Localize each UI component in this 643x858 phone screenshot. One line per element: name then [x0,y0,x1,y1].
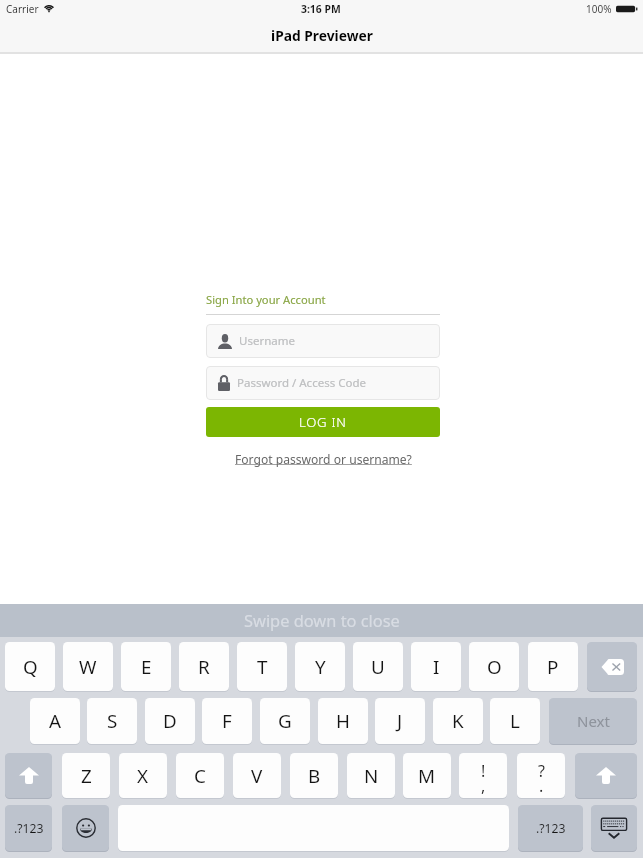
staticText: M [418,763,436,789]
staticText: Swipe down to close [244,609,400,631]
button[interactable]: P [528,642,578,691]
button[interactable]: A [30,698,80,744]
staticText: 100% [586,2,612,16]
staticText: Password / Access Code [237,375,366,391]
button[interactable]: ? [517,753,565,798]
button[interactable]: G [260,698,310,744]
staticText: V [251,763,263,789]
button[interactable]: Shift [5,753,52,798]
staticText: S [107,708,118,734]
staticText: Carrier [6,2,39,16]
staticText: I [433,654,440,680]
button[interactable]: Password / Access Code [206,366,440,400]
button[interactable]: Q [5,642,55,691]
staticText: P [547,654,559,680]
button[interactable]: LOG IN [206,407,440,437]
staticText: T [257,654,268,680]
button[interactable]: Y [295,642,345,691]
button[interactable]: B [290,753,338,798]
staticText: K [452,708,464,734]
staticText: 3:16 PM [301,2,341,16]
staticText: A [49,708,62,734]
button[interactable]: .?123 [5,805,52,851]
button[interactable]: M [403,753,451,798]
button[interactable]: ! [459,753,507,798]
button[interactable]: O [469,642,519,691]
button[interactable]: X [119,753,167,798]
other: Shift [596,767,616,784]
staticText: C [194,763,206,789]
button[interactable]: W [63,642,113,691]
button[interactable]: F [202,698,252,744]
button[interactable]: S [87,698,137,744]
staticText: G [278,708,292,734]
other: Shift [19,767,39,784]
staticText: X [137,763,149,789]
button[interactable]: V [233,753,281,798]
other: Emoji [76,818,96,838]
button[interactable]: D [145,698,195,744]
button[interactable]: Backspace [587,642,637,691]
staticText: U [371,654,385,680]
button[interactable]: J [375,698,425,744]
button[interactable]: C [176,753,224,798]
button[interactable]: Emoji [62,805,109,851]
staticText: .?123 [14,820,44,837]
staticText: E [141,654,152,680]
button[interactable]: E [121,642,171,691]
staticText: Y [315,654,326,680]
staticText: Next [577,711,610,731]
staticText: J [397,708,403,734]
button[interactable]: R [179,642,229,691]
staticText: D [163,708,177,734]
staticText: Q [23,654,38,680]
staticText: H [336,708,350,734]
button[interactable]: K [433,698,483,744]
staticText: Username [239,333,295,349]
staticText: ? [538,760,545,782]
other: Wi-Fi [44,5,54,13]
staticText: F [222,708,232,734]
button[interactable]: Hide keyboard [591,805,637,851]
button[interactable]: .?123 [518,805,583,851]
button[interactable]: Z [62,753,110,798]
staticText: Z [81,763,92,789]
staticText: B [308,763,321,789]
staticText: Sign Into your Account [206,292,326,307]
button[interactable]: Shift [575,753,637,798]
other: Backspace [600,659,624,675]
staticText: W [79,654,97,680]
button[interactable]: Next [549,698,637,744]
other: Hide keyboard [600,817,628,839]
staticText: . [539,775,544,797]
staticText: ! [481,760,486,782]
button[interactable]: I [411,642,461,691]
staticText: , [481,775,486,797]
button[interactable]: Username [206,324,440,358]
staticText: iPad Previewer [271,26,373,45]
button[interactable]: L [490,698,540,744]
button[interactable]: T [237,642,287,691]
button[interactable]: H [318,698,368,744]
staticText: LOG IN [299,413,347,431]
staticText: R [198,654,210,680]
staticText: .?123 [536,820,566,837]
button[interactable]: U [353,642,403,691]
staticText: L [510,708,520,734]
button[interactable]: Forgot password or username? [235,451,412,467]
staticText: N [364,763,379,789]
other: Battery [616,5,637,13]
button[interactable]: N [347,753,395,798]
staticText: O [487,654,502,680]
